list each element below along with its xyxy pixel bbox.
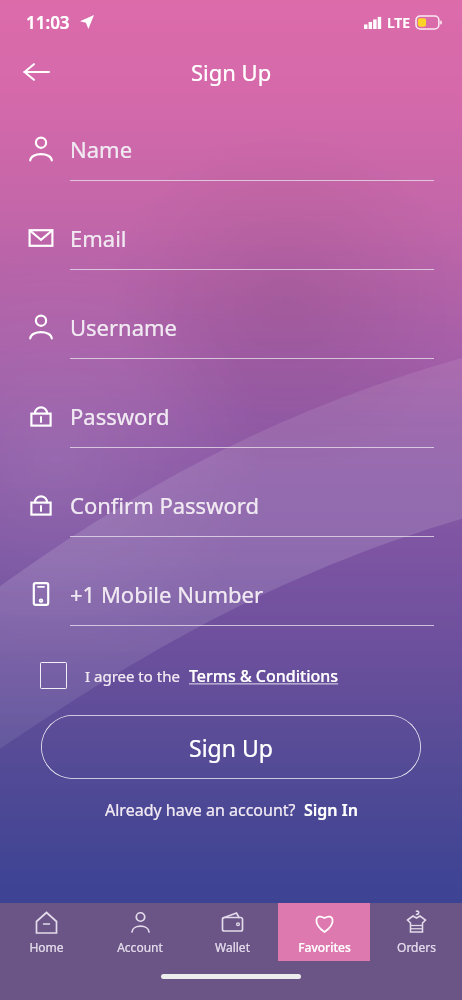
staticText: Home xyxy=(29,939,64,955)
staticText: Name xyxy=(70,134,133,164)
staticText: I agree to the xyxy=(85,666,180,686)
staticText: Terms & Conditions xyxy=(189,665,339,687)
button[interactable]: Back xyxy=(12,48,60,96)
staticText: +1 Mobile Number xyxy=(70,579,264,609)
button[interactable]: Account xyxy=(93,903,186,961)
staticText: Orders xyxy=(397,939,436,955)
button[interactable]: +1 Mobile Number xyxy=(0,563,462,652)
staticText: Sign Up xyxy=(191,57,272,87)
staticText: Username xyxy=(70,312,178,342)
button[interactable]: Email xyxy=(0,207,462,296)
button[interactable]: I agree to the xyxy=(40,662,462,689)
staticText: Wallet xyxy=(215,939,250,955)
staticText: 11:03 xyxy=(26,11,70,34)
staticText: Confirm Password xyxy=(70,490,259,520)
button[interactable]: Wallet xyxy=(186,903,278,961)
staticText: Account xyxy=(117,939,163,955)
button[interactable]: Confirm Password xyxy=(0,474,462,563)
button[interactable]: Orders xyxy=(370,903,462,961)
button[interactable]: Password xyxy=(0,385,462,474)
button[interactable]: Username xyxy=(0,296,462,385)
button[interactable]: Home xyxy=(0,903,93,961)
button[interactable]: Name xyxy=(0,118,462,207)
button[interactable]: Sign Up xyxy=(41,715,421,779)
button[interactable]: Favorites xyxy=(278,903,370,961)
staticText: Already have an account? xyxy=(105,799,296,821)
staticText: LTE xyxy=(387,13,411,32)
staticText: Favorites xyxy=(298,939,351,955)
staticText: Email xyxy=(70,223,127,253)
staticText: Sign In xyxy=(304,799,358,821)
staticText: Password xyxy=(70,401,170,431)
staticText: Sign Up xyxy=(189,732,273,763)
button[interactable]: Sign In xyxy=(304,799,358,821)
button[interactable]: Terms & Conditions xyxy=(189,665,339,687)
